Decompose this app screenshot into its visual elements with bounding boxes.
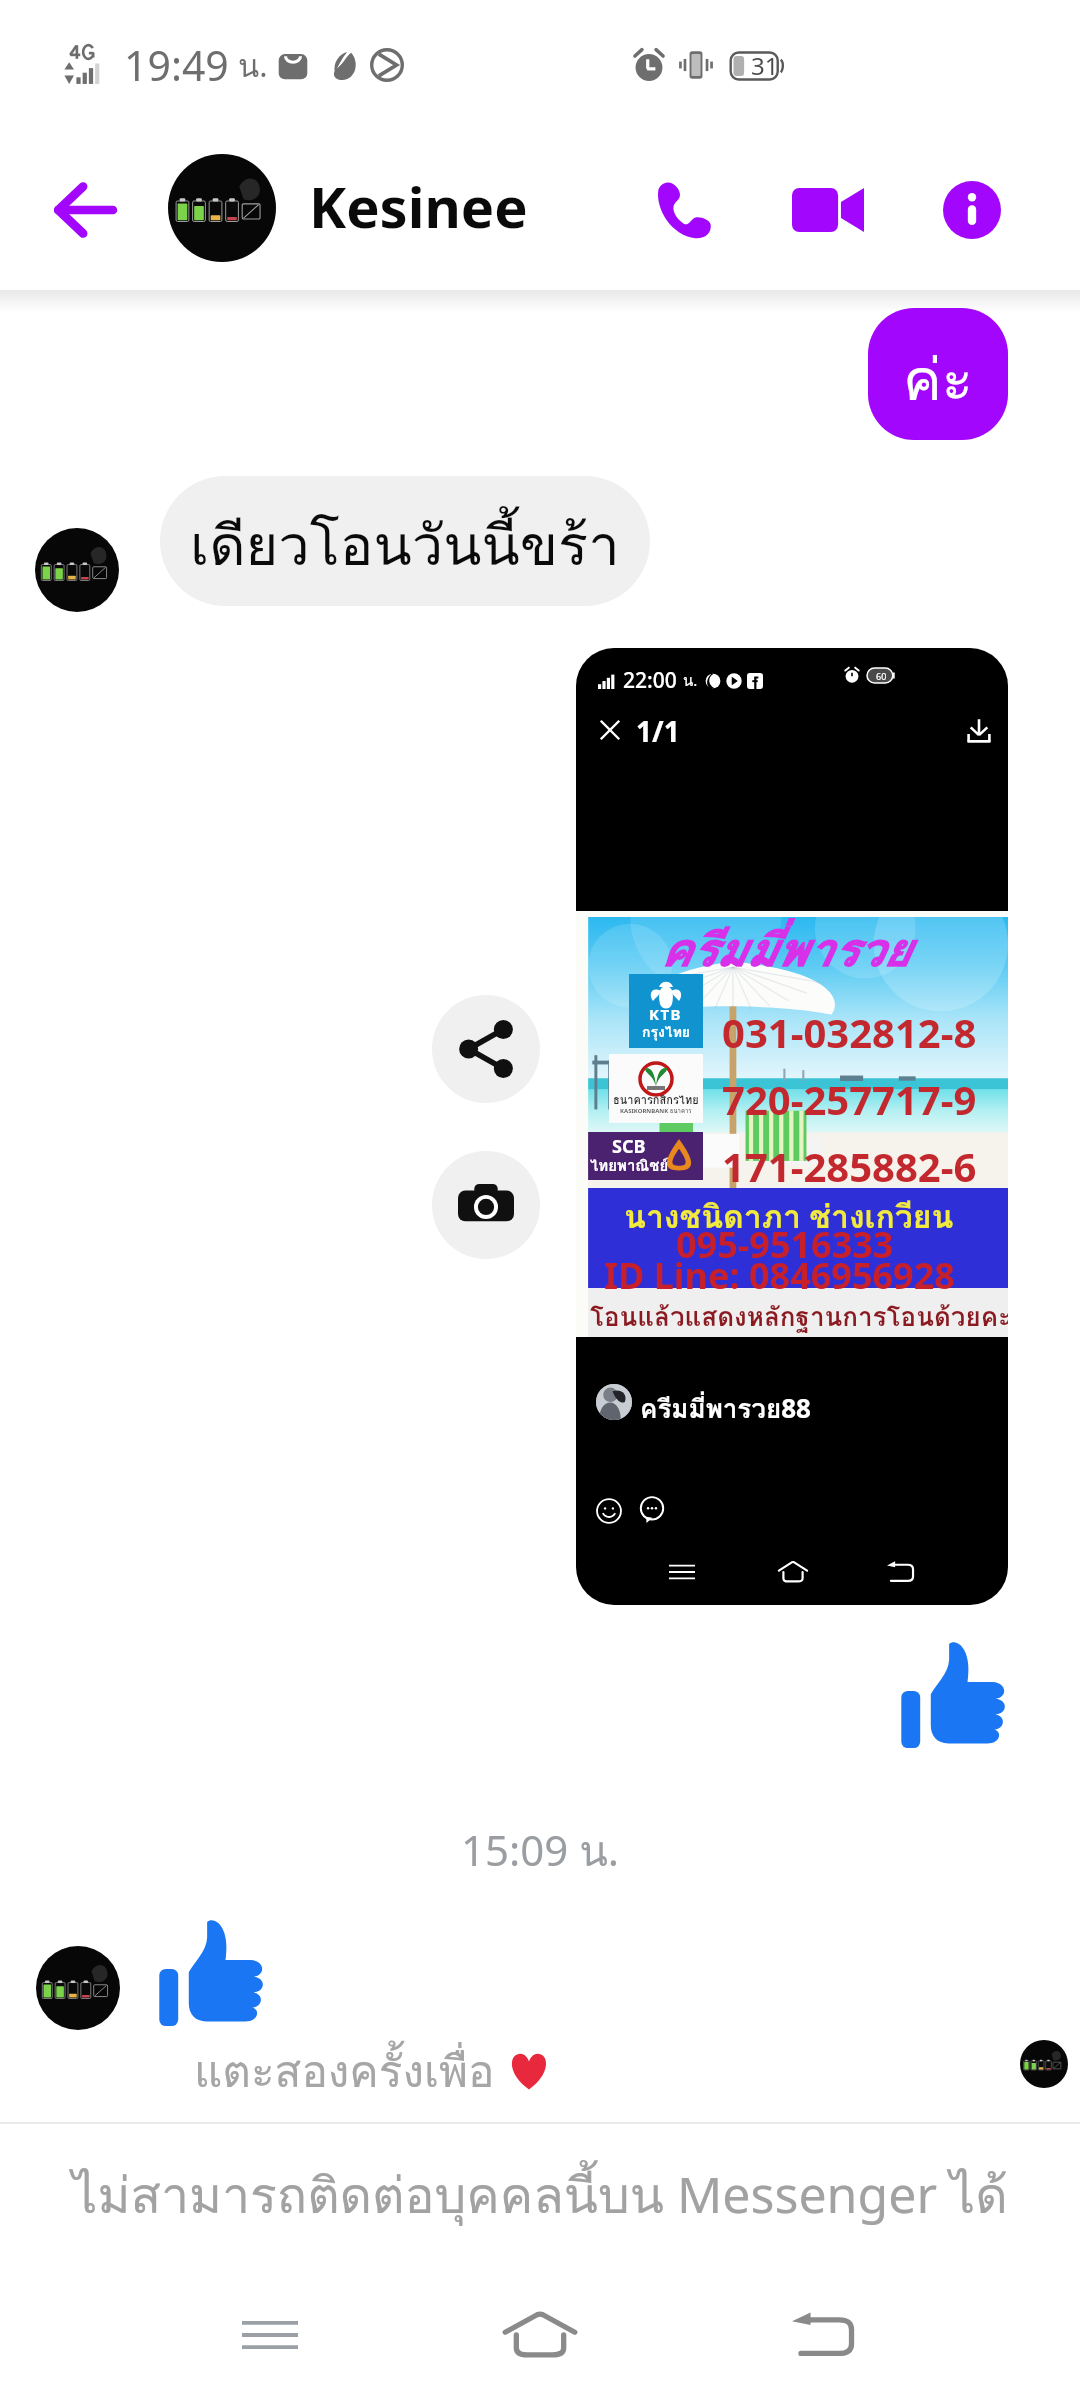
staticText: ครีมมี่พารวย88 [640, 1388, 811, 1429]
staticText: นางชนิดาภา ช่างเกวียน [624, 1191, 954, 1242]
button[interactable]: Profile photo [36, 1946, 120, 2030]
staticText: 31 [751, 49, 779, 82]
staticText: 095-9516333 [676, 1220, 894, 1269]
button[interactable]: Video call [773, 155, 883, 265]
staticText: โอนแล้วแสดงหลักฐานการโอนด้วยคะ [590, 1296, 1008, 1337]
button[interactable]: Recent apps [215, 2280, 325, 2390]
button[interactable]: Thumbs up sticker [158, 1918, 266, 2030]
button[interactable]: Thumbs up sticker [900, 1640, 1008, 1752]
button[interactable]: Back [769, 2280, 879, 2390]
staticText: น. [238, 41, 268, 90]
button[interactable]: Download [966, 718, 992, 744]
button[interactable]: Back [30, 155, 140, 265]
button[interactable]: Conversation information [917, 155, 1027, 265]
button[interactable]: Profile photo [35, 528, 119, 612]
staticText: 1/1 [636, 712, 680, 750]
staticText: ไม่สามารถติดต่อบุคคลนี้บน Messenger ได้ [0, 2156, 1080, 2235]
staticText: KTB [649, 1004, 683, 1024]
button[interactable]: Home [485, 2280, 595, 2390]
staticText: 171-285882-6 [722, 1139, 977, 1193]
staticText: ID Line: 0846956928 [604, 1251, 955, 1300]
button[interactable]: Profile photo [168, 154, 276, 262]
staticText: KASIKORNBANK ธนาคาร [620, 1106, 692, 1116]
button[interactable]: Camera [432, 1151, 540, 1259]
staticText: 22:00 [623, 666, 683, 695]
staticText: ธนาคารกสิกรไทย [613, 1091, 699, 1108]
staticText: ค่ะ [903, 333, 973, 425]
staticText: เดียวโอนวันนี้ขร้า [190, 501, 620, 590]
staticText: 60 [876, 670, 887, 682]
button[interactable]: Share [432, 995, 540, 1103]
staticText: 720-257717-9 [722, 1072, 977, 1126]
button[interactable]: Kesinee [309, 168, 528, 244]
staticText: SCB [612, 1134, 646, 1159]
staticText: 15:09 น. [0, 1818, 1080, 1885]
button[interactable]: Photo attachment [576, 648, 1008, 1605]
button[interactable]: Close [599, 719, 621, 741]
button[interactable]: Voice call [629, 155, 739, 265]
staticText: น. [683, 669, 698, 693]
staticText: แตะสองครั้งเพื่อ [194, 2036, 506, 2106]
staticText: ไทยพาณิชย์ [590, 1154, 669, 1178]
staticText: ครีมมี่พารวย [660, 913, 910, 986]
button[interactable]: เดียวโอนวันนี้ขร้า [160, 476, 650, 606]
staticText: 031-032812-8 [722, 1005, 977, 1059]
staticText: 19:49 [124, 37, 229, 93]
staticText: กรุงไทย [642, 1021, 691, 1043]
button[interactable]: ค่ะ [868, 308, 1008, 440]
